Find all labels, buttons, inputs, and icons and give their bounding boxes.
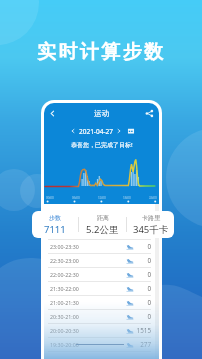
button[interactable]: 19:30-20:00 [44, 338, 155, 351]
button[interactable]: 步数 [32, 214, 78, 236]
button[interactable]: 22:00-22:30 [44, 268, 155, 281]
button[interactable]: 21:00-21:30 [44, 296, 155, 309]
staticText: 5.2公里 [86, 223, 119, 236]
staticText: 24:00 [149, 196, 157, 200]
staticText: 1515 [135, 326, 151, 335]
button[interactable]: 22:30-23:00 [44, 254, 155, 267]
button[interactable]: 距离 [79, 214, 126, 236]
staticText: 06:00 [72, 196, 80, 200]
staticText: 345千卡 [133, 223, 169, 236]
staticText: 0 [135, 270, 151, 279]
button[interactable]: Back [47, 108, 58, 119]
button[interactable]: 23:30-24:00 [44, 226, 155, 239]
button[interactable]: 21:30-22:00 [44, 282, 155, 295]
button[interactable]: 23:00-23:30 [44, 240, 155, 253]
staticText: 0 [135, 312, 151, 321]
staticText: 12:00 [98, 196, 106, 200]
staticText: 20:00-20:30 [50, 327, 79, 334]
button[interactable]: 卡路里 [127, 214, 174, 236]
staticText: 00:00 [46, 196, 54, 200]
staticText: 0 [135, 298, 151, 307]
staticText: 0 [135, 256, 151, 265]
button[interactable]: Previous day [69, 127, 77, 135]
staticText: 22:00-22:30 [50, 271, 79, 278]
staticText: 22:30-23:00 [50, 257, 79, 264]
staticText: 277 [135, 340, 151, 349]
staticText: 恭喜您，已完成了目标! [71, 141, 133, 149]
staticText: 19:30-20:00 [50, 341, 79, 348]
staticText: 运动 [94, 109, 109, 118]
staticText: 2021-04-27 [79, 127, 113, 136]
staticText: 21:00-21:30 [50, 299, 79, 306]
staticText: 步数 [49, 214, 61, 222]
staticText: 20:30-21:00 [50, 313, 79, 320]
staticText: 18:00 [123, 196, 131, 200]
staticText: 21:30-22:00 [50, 285, 79, 292]
button[interactable]: Pick date [127, 127, 135, 135]
staticText: 0 [135, 284, 151, 293]
staticText: 实时计算步数 [37, 40, 166, 64]
button[interactable]: 20:30-21:00 [44, 310, 155, 323]
staticText: 23:30-24:00 [50, 229, 79, 236]
staticText: 0 [135, 242, 151, 251]
staticText: 距离 [97, 214, 109, 222]
button[interactable]: Share [144, 108, 155, 119]
staticText: 23:00-23:30 [50, 243, 79, 250]
staticText: 7111 [44, 223, 66, 236]
staticText: 0 [135, 228, 151, 237]
staticText: 卡路里 [142, 214, 160, 222]
button[interactable]: Next day [115, 127, 123, 135]
button[interactable]: 20:00-20:30 [44, 324, 155, 337]
